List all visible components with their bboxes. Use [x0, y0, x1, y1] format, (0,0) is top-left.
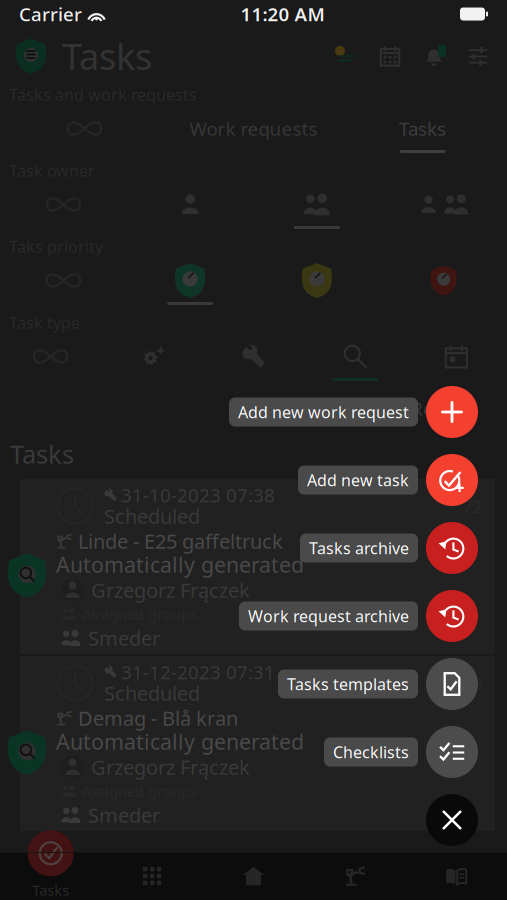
staticText: 31-10-2023 07:38 [121, 483, 275, 507]
button[interactable]: Settings [456, 34, 500, 78]
button[interactable]: Add new task [0, 454, 507, 506]
staticText: 11:20 AM [240, 2, 324, 26]
button[interactable]: Tasks archive [0, 522, 507, 574]
staticText: Carrier [19, 2, 82, 26]
staticText: Tasks and work requests [9, 84, 197, 105]
staticText: Add new work request [238, 401, 409, 423]
button[interactable]: Calendar [368, 34, 412, 78]
staticText: Add new task [307, 469, 409, 491]
button[interactable] [127, 257, 254, 312]
button[interactable]: 31-10-2023 07:38 [0, 479, 507, 654]
staticText: Scheduled [104, 503, 200, 529]
staticText: Linde - E25 gaffeltruck [78, 528, 283, 554]
staticText: Tasks templates [287, 673, 409, 695]
button[interactable]: Add new work request [0, 386, 507, 438]
button[interactable]: 31-12-2023 07:31 [0, 656, 507, 831]
button[interactable]: Close menu [426, 794, 478, 846]
staticText: Task type [9, 312, 80, 333]
button[interactable] [406, 333, 507, 388]
staticText: Tasks archive [309, 537, 409, 559]
button[interactable]: Tab [203, 852, 304, 900]
staticText: Work requests [189, 116, 317, 141]
staticText: Automatically generated [56, 727, 304, 756]
staticText: /3 [465, 671, 483, 695]
button[interactable] [203, 333, 304, 388]
staticText: Tasks [10, 437, 74, 471]
button[interactable]: Tab [406, 852, 507, 900]
button[interactable] [127, 181, 254, 236]
button[interactable] [380, 181, 507, 236]
button[interactable]: Tasks [0, 852, 101, 900]
staticText: Checklists [333, 741, 409, 763]
button[interactable]: Tasks [338, 105, 507, 160]
button[interactable]: Tab [304, 852, 406, 900]
staticText: Tasks [399, 116, 446, 141]
button[interactable]: Refresh [384, 394, 485, 422]
staticText: Taks priority [9, 236, 103, 257]
staticText: Smeder [88, 625, 160, 651]
button[interactable] [253, 257, 380, 312]
button[interactable] [304, 333, 406, 388]
staticText: Automatically generated [56, 550, 304, 579]
staticText: 31-12-2023 07:31 [121, 660, 275, 684]
staticText: Demag - Blå kran [78, 705, 238, 731]
staticText: Scheduled [104, 680, 200, 706]
button[interactable]: Filters [324, 34, 368, 78]
staticText: Grzegorz Frączek [91, 577, 250, 603]
staticText: /2 [465, 494, 483, 518]
staticText: Tasks [32, 880, 69, 900]
button[interactable]: Tab [101, 852, 203, 900]
staticText: Tasks [62, 32, 152, 80]
staticText: Smeder [88, 802, 160, 828]
button[interactable]: Work requests [169, 105, 338, 160]
staticText: Grzegorz Frączek [91, 754, 250, 780]
staticText: Work request archive [248, 605, 409, 627]
staticText: Refresh [411, 396, 479, 421]
button[interactable] [253, 181, 380, 236]
staticText: Task owner [9, 160, 95, 181]
button[interactable]: Tasks templates [0, 658, 507, 710]
button[interactable]: Checklists [0, 726, 507, 778]
button[interactable] [380, 257, 507, 312]
button[interactable]: Work request archive [0, 590, 507, 642]
button[interactable]: Notifications [412, 34, 456, 78]
